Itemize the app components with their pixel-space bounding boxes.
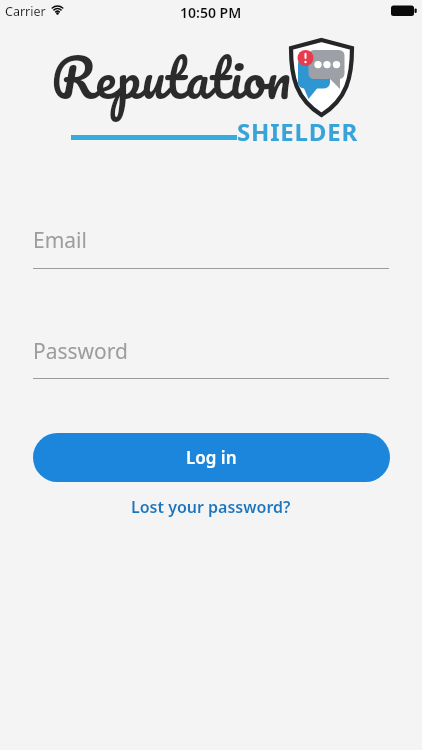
staticText: 10:50 PM	[180, 3, 242, 22]
staticText: Password	[33, 337, 128, 366]
staticText: Reputation	[51, 32, 291, 122]
staticText: Email	[33, 226, 87, 255]
button[interactable]: Password	[31, 337, 389, 379]
button[interactable]: Lost your password?	[129, 494, 293, 520]
staticText: Carrier	[5, 3, 46, 20]
staticText: Log in	[186, 446, 237, 469]
button[interactable]: Email	[31, 226, 389, 269]
button[interactable]: Log in	[33, 433, 390, 482]
staticText: SHIELDER	[237, 115, 358, 148]
